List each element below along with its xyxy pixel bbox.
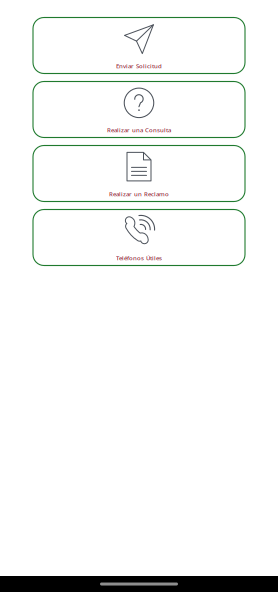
staticText: Realizar una Consulta: [107, 126, 171, 134]
button[interactable]: Teléfonos Útiles: [33, 209, 245, 265]
staticText: Enviar Solicitud: [116, 62, 162, 70]
button[interactable]: Enviar Solicitud: [33, 17, 245, 73]
staticText: Teléfonos Útiles: [116, 254, 162, 262]
staticText: Realizar un Reclamo: [109, 190, 169, 198]
button[interactable]: Realizar un Reclamo: [33, 145, 245, 201]
button[interactable]: Realizar una Consulta: [33, 81, 245, 137]
